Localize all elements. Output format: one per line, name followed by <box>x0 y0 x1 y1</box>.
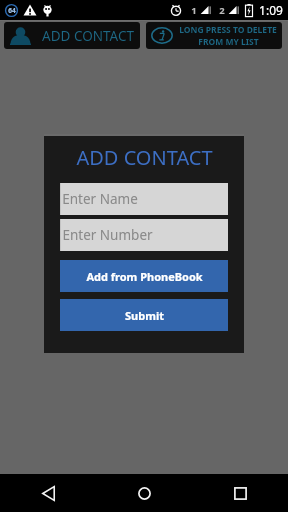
button[interactable]: LONG PRESS TO DELETE <box>146 22 282 49</box>
staticText: Add from PhoneBook <box>86 269 203 284</box>
staticText: 1:09 <box>259 2 283 18</box>
staticText: Enter Name <box>62 190 138 208</box>
staticText: FROM MY LIST <box>198 36 259 48</box>
button[interactable]: Home <box>96 474 192 512</box>
button[interactable]: Add from PhoneBook <box>60 260 228 292</box>
button[interactable]: ADD CONTACT <box>4 22 140 49</box>
staticText: Enter Number <box>62 226 153 244</box>
button[interactable]: Enter Name <box>60 183 228 215</box>
staticText: 2 <box>219 4 225 17</box>
staticText: LONG PRESS TO DELETE <box>179 24 277 36</box>
button[interactable]: Submit <box>60 299 228 331</box>
staticText: ADD CONTACT <box>42 27 134 45</box>
button[interactable]: Back <box>0 474 96 512</box>
staticText: 1 <box>191 4 197 17</box>
staticText: 64 <box>8 6 16 15</box>
button[interactable]: Enter Number <box>60 219 228 251</box>
staticText: ADD CONTACT <box>76 144 213 171</box>
button[interactable]: Recent apps <box>192 474 288 512</box>
staticText: Submit <box>125 308 164 323</box>
